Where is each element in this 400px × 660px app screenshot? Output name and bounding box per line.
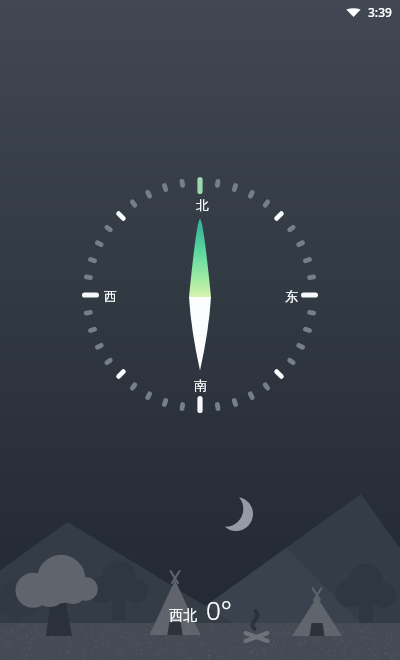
staticText: 西 xyxy=(104,288,117,304)
staticText: 西北 xyxy=(169,607,197,625)
staticText: 南 xyxy=(194,377,207,393)
staticText: 0° xyxy=(206,592,232,627)
button[interactable]: 西北 xyxy=(0,592,400,627)
staticText: 3:39 xyxy=(368,4,392,20)
staticText: 北 xyxy=(196,197,209,213)
staticText: 东 xyxy=(285,288,298,304)
other: Wi-Fi xyxy=(346,6,361,18)
